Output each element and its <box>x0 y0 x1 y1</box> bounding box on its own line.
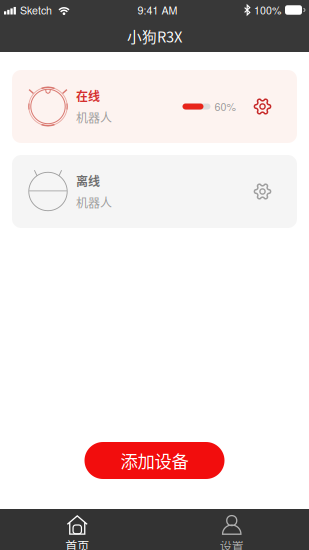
button[interactable]: 首页 <box>0 509 154 550</box>
staticText: 100% <box>254 2 281 18</box>
staticText: 离线 <box>76 172 100 189</box>
staticText: 机器人 <box>76 108 112 126</box>
staticText: 添加设备 <box>120 448 188 473</box>
button[interactable]: 离线 <box>12 155 297 228</box>
button[interactable]: 设置 <box>154 509 309 550</box>
button[interactable]: 添加设备 <box>84 442 224 479</box>
staticText: 60% <box>214 99 235 114</box>
staticText: 在线 <box>76 87 100 104</box>
staticText: 机器人 <box>76 193 112 211</box>
staticText: 9:41 AM <box>137 2 177 18</box>
button[interactable]: 在线 <box>12 70 297 143</box>
staticText: 首页 <box>65 537 89 550</box>
staticText: Sketch <box>20 2 52 18</box>
staticText: 设置 <box>220 537 244 550</box>
staticText: 小狗R3X <box>127 25 182 47</box>
